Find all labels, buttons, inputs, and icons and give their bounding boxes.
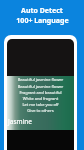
staticText: Jasmine <box>8 117 32 126</box>
staticText: Beautiful jasmine flower Beautiful jasmi… <box>7 77 74 113</box>
staticText: 100+ Language <box>16 16 69 26</box>
staticText: Auto Detect <box>21 6 63 16</box>
